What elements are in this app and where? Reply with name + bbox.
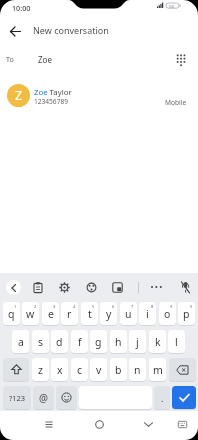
button[interactable]: p <box>178 302 195 325</box>
staticText: s <box>38 335 44 349</box>
staticText: 9 <box>170 304 173 309</box>
button[interactable]: To <box>0 48 198 72</box>
button[interactable]: h <box>110 330 127 353</box>
staticText: v <box>96 363 102 377</box>
staticText: p <box>183 307 190 321</box>
button[interactable] <box>3 358 29 381</box>
button[interactable] <box>112 282 123 293</box>
staticText: 2 <box>34 304 37 309</box>
staticText: New conversation <box>33 24 109 36</box>
button[interactable]: a <box>12 330 29 353</box>
staticText: 3 <box>53 304 56 309</box>
staticText: n <box>134 363 141 377</box>
staticText: 1 <box>14 304 17 309</box>
staticText: . <box>161 392 164 404</box>
button[interactable]: b <box>110 358 127 381</box>
staticText: a <box>18 335 24 349</box>
button[interactable]: Z <box>0 81 198 110</box>
button[interactable] <box>150 285 164 289</box>
button[interactable]: v <box>90 358 107 381</box>
staticText: u <box>125 307 132 321</box>
staticText: To <box>6 55 14 65</box>
button[interactable]: j <box>129 330 146 353</box>
button[interactable] <box>6 280 21 295</box>
button[interactable]: o <box>159 302 176 325</box>
staticText: f <box>78 335 82 349</box>
staticText: Mobile <box>165 98 187 107</box>
button[interactable] <box>86 282 97 293</box>
staticText: g <box>95 335 102 349</box>
button[interactable] <box>95 420 104 429</box>
button[interactable]: t <box>81 302 98 325</box>
staticText: d <box>56 335 63 349</box>
staticText: w <box>26 307 35 321</box>
staticText: q <box>8 307 15 321</box>
staticText: @ <box>39 391 48 405</box>
button[interactable] <box>45 421 53 427</box>
button[interactable]: f <box>71 330 88 353</box>
staticText: 6 <box>112 304 115 309</box>
staticText: c <box>77 363 83 377</box>
staticText: Z <box>15 87 23 104</box>
staticText: j <box>136 335 139 349</box>
button[interactable]: . <box>154 386 170 409</box>
staticText: 123456789 <box>34 97 68 106</box>
button[interactable] <box>144 422 153 427</box>
button[interactable]: y <box>100 302 117 325</box>
button[interactable]: m <box>149 358 166 381</box>
button[interactable] <box>59 282 70 293</box>
staticText: k <box>155 335 161 349</box>
button[interactable]: s <box>32 330 49 353</box>
button[interactable]: d <box>51 330 68 353</box>
staticText: l <box>175 335 178 349</box>
staticText: 8 <box>151 304 154 309</box>
staticText: o <box>164 307 171 321</box>
staticText: 100 <box>168 4 175 9</box>
staticText: i <box>146 307 149 321</box>
staticText: 4 <box>73 304 76 309</box>
button[interactable]: ?123 <box>3 386 31 409</box>
button[interactable]: n <box>129 358 146 381</box>
button[interactable]: u <box>120 302 137 325</box>
staticText: b <box>115 363 122 377</box>
button[interactable] <box>4 22 26 40</box>
button[interactable]: c <box>71 358 88 381</box>
button[interactable] <box>178 421 187 428</box>
button[interactable]: i <box>139 302 156 325</box>
button[interactable]: w <box>22 302 39 325</box>
button[interactable]: l <box>168 330 185 353</box>
staticText: r <box>67 307 72 321</box>
button[interactable]: e <box>42 302 59 325</box>
button[interactable] <box>56 386 77 409</box>
staticText: m <box>153 363 163 377</box>
staticText: Zoe <box>38 54 52 65</box>
button[interactable]: z <box>32 358 49 381</box>
button[interactable]: r <box>61 302 78 325</box>
staticText: y <box>106 307 112 321</box>
button[interactable] <box>172 386 196 409</box>
staticText: ?123 <box>9 393 26 403</box>
staticText: h <box>115 335 122 349</box>
button[interactable]: g <box>90 330 107 353</box>
button[interactable] <box>180 281 191 294</box>
staticText: 5 <box>92 304 95 309</box>
button[interactable]: x <box>51 358 68 381</box>
staticText: t <box>88 307 92 321</box>
button[interactable] <box>169 358 196 381</box>
button[interactable] <box>33 282 43 293</box>
button[interactable]: k <box>149 330 166 353</box>
staticText: 7 <box>131 304 134 309</box>
button[interactable]: q <box>3 302 20 325</box>
staticText: e <box>48 307 54 321</box>
button[interactable]: @ <box>33 386 54 409</box>
staticText: 0 <box>190 304 193 309</box>
staticText: Zoe Taylor <box>34 87 72 98</box>
staticText: 10:00 <box>12 3 31 13</box>
staticText: z <box>38 363 43 377</box>
staticText: x <box>57 363 63 377</box>
